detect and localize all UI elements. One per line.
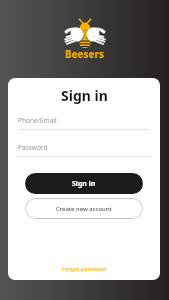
staticText: Forgot password (62, 265, 107, 273)
button[interactable]: Sign in (25, 173, 143, 194)
staticText: Beesers (65, 47, 105, 61)
staticText: Sign in (72, 179, 96, 189)
staticText: Phone/Email (18, 116, 57, 125)
button[interactable]: Forgot password (56, 264, 113, 274)
staticText: Password (18, 143, 48, 152)
staticText: Sign in (61, 86, 108, 105)
button[interactable]: Create new account (25, 198, 143, 219)
other: Beesers logo (63, 18, 107, 48)
staticText: Create new account (56, 205, 112, 213)
